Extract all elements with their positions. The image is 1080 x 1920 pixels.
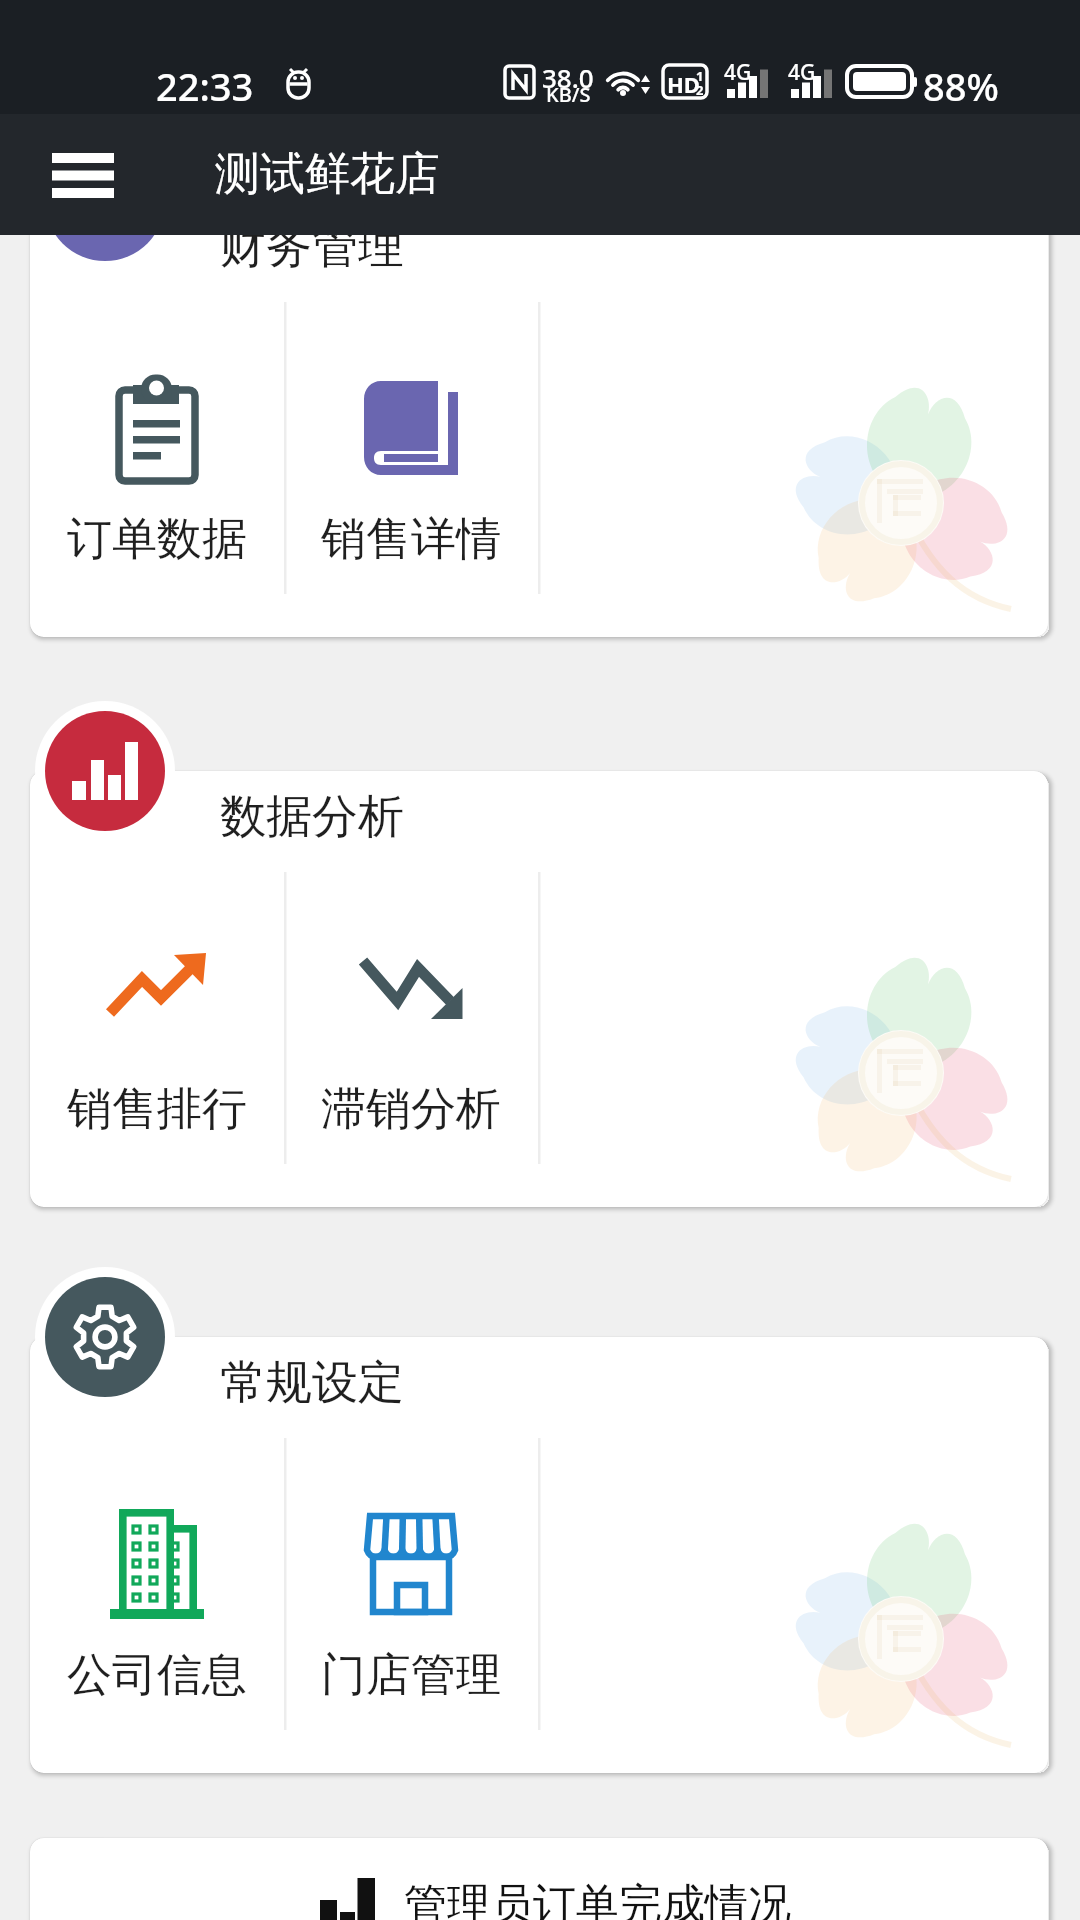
staticText: 门店管理 xyxy=(321,1647,501,1704)
button[interactable]: 财务管理 xyxy=(30,201,1048,301)
staticText: 公司信息 xyxy=(67,1647,247,1704)
staticText: 管理员订单完成情况 xyxy=(404,1878,791,1920)
staticText: 22:33 xyxy=(156,60,254,112)
button[interactable]: Menu xyxy=(28,120,138,230)
button[interactable]: 公司信息 xyxy=(30,1509,284,1709)
staticText: KB/S xyxy=(546,81,591,108)
button[interactable]: 数据分析 xyxy=(35,701,175,841)
staticText: 2 xyxy=(696,81,704,99)
button[interactable]: 门店管理 xyxy=(284,1509,538,1709)
staticText: 财务管理 xyxy=(220,218,404,276)
button[interactable]: 常规设定 xyxy=(35,1267,175,1407)
staticText: 销售详情 xyxy=(321,511,501,568)
staticText: 4G xyxy=(724,58,752,87)
staticText: 测试鲜花店 xyxy=(215,146,440,203)
button[interactable]: 管理员订单完成情况 xyxy=(30,1838,1048,1920)
staticText: 常规设定 xyxy=(220,1354,404,1412)
staticText: 4G xyxy=(788,58,816,87)
staticText: HD xyxy=(667,69,700,99)
staticText: 38.0 xyxy=(542,60,594,95)
button[interactable]: 订单数据 xyxy=(30,373,284,573)
staticText: 数据分析 xyxy=(220,788,404,846)
button[interactable]: 常规设定 xyxy=(30,1337,1048,1437)
staticText: 1 xyxy=(696,67,704,85)
button[interactable]: 数据分析 xyxy=(30,771,1048,871)
button[interactable]: 销售详情 xyxy=(284,373,538,573)
button[interactable]: 财务管理 xyxy=(35,131,175,271)
button[interactable]: 销售排行 xyxy=(30,943,284,1143)
staticText: 订单数据 xyxy=(67,511,247,568)
staticText: 滞销分析 xyxy=(321,1081,501,1138)
staticText: 88% xyxy=(923,60,999,112)
staticText: 销售排行 xyxy=(67,1081,247,1138)
button[interactable]: 滞销分析 xyxy=(284,943,538,1143)
